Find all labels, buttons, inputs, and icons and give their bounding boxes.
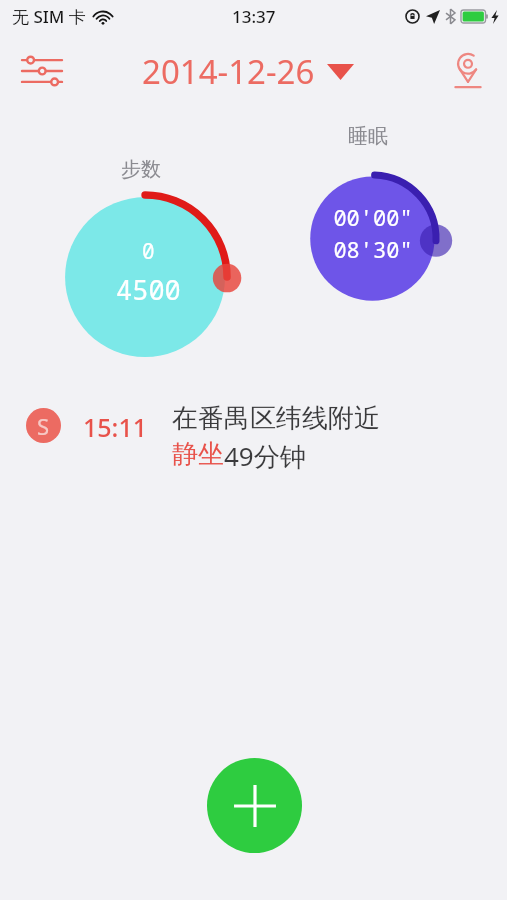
staticText: 00'00" [333,202,413,232]
staticText: 13:37 [232,5,276,28]
button[interactable]: Settings [14,43,70,99]
staticText: S [37,411,50,441]
button[interactable]: Add [207,758,302,853]
staticText: 0 [142,237,155,266]
button[interactable]: S [0,396,507,480]
staticText: 4500 [116,271,181,308]
button[interactable]: 00'00" [308,155,456,303]
button[interactable]: 0 [55,176,245,366]
button[interactable]: 2014-12-26 [136,45,360,98]
staticText: 静坐 [172,438,224,471]
staticText: 2014-12-26 [142,49,315,94]
staticText: 步数 [121,157,161,182]
staticText: 在番禺区纬线附近 [172,402,380,435]
staticText: 08'30" [333,234,413,264]
button[interactable]: Location [441,44,495,98]
staticText: 无 SIM 卡 [12,5,86,28]
staticText: 睡眠 [348,124,388,149]
staticText: 15:11 [83,410,148,444]
staticText: 49分钟 [224,438,306,474]
